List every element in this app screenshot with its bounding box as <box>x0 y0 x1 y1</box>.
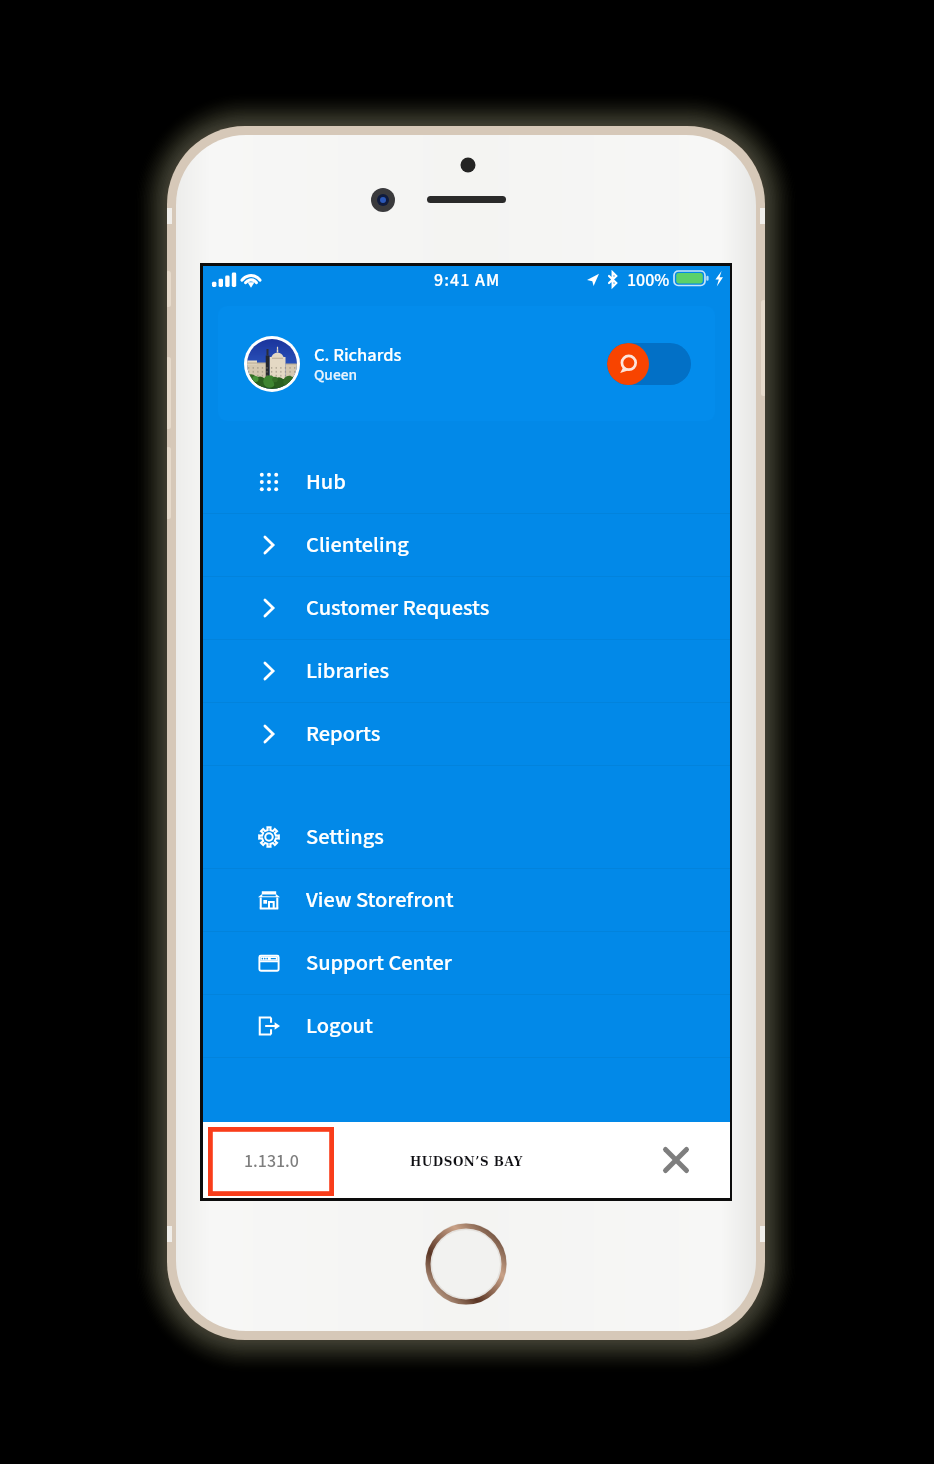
staticText: Reports <box>306 718 381 750</box>
staticText: Clienteling <box>306 529 409 561</box>
button[interactable]: Close <box>654 1138 698 1182</box>
button[interactable]: C. Richards <box>218 306 715 421</box>
staticText: 100% <box>627 268 670 294</box>
button[interactable]: Clienteling <box>203 514 730 577</box>
staticText: HUDSON’S BAY <box>410 1155 523 1169</box>
staticText: Logout <box>306 1010 373 1042</box>
staticText: Hub <box>306 466 346 498</box>
button[interactable]: 1.131.0 <box>208 1127 334 1196</box>
button[interactable]: Reports <box>203 703 730 766</box>
staticText: Queen <box>314 364 357 386</box>
staticText: Customer Requests <box>306 592 490 624</box>
button[interactable]: Support Center <box>203 932 730 995</box>
staticText: 1.131.0 <box>244 1149 299 1175</box>
button[interactable]: Customer Requests <box>203 577 730 640</box>
button[interactable]: Hub <box>203 451 730 514</box>
staticText: Support Center <box>306 947 452 979</box>
button[interactable]: Libraries <box>203 640 730 703</box>
button[interactable]: Logout <box>203 995 730 1058</box>
staticText: 9:41 AM <box>434 268 501 294</box>
button[interactable]: Settings <box>203 806 730 869</box>
staticText: Libraries <box>306 655 390 687</box>
staticText: View Storefront <box>306 884 454 916</box>
button[interactable]: Chat toggle <box>607 343 691 385</box>
staticText: C. Richards <box>314 342 402 368</box>
staticText: Settings <box>306 821 384 853</box>
button[interactable]: View Storefront <box>203 869 730 932</box>
